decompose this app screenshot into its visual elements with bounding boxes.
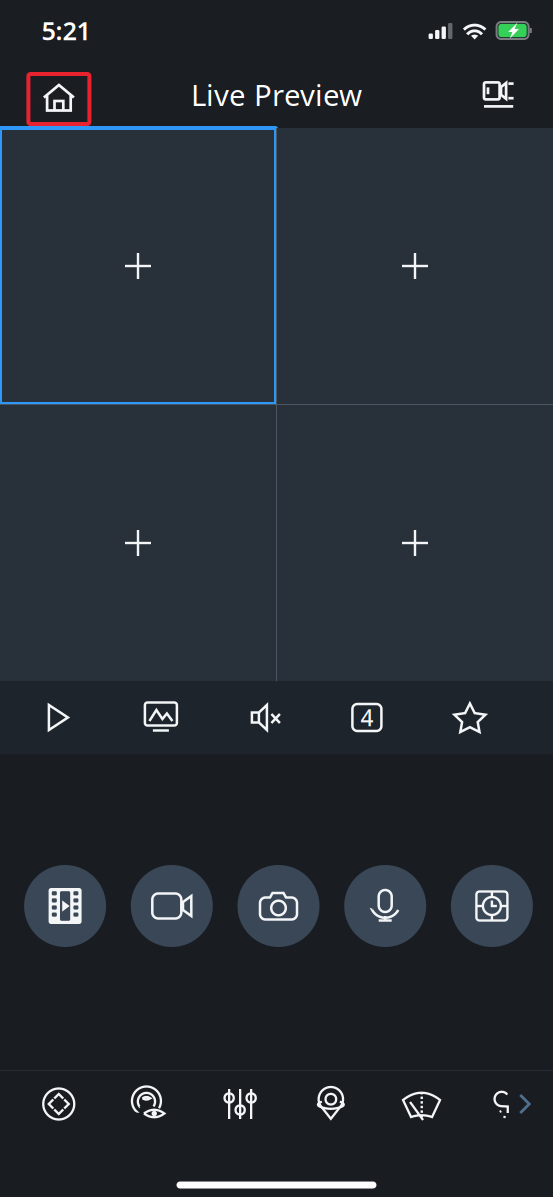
staticText: 5:21 [41, 14, 90, 47]
button[interactable]: Image adjustments [195, 1071, 285, 1137]
button[interactable]: Take photo [237, 865, 319, 947]
button[interactable]: Privacy mask [104, 1071, 195, 1137]
button[interactable]: Record video [131, 865, 213, 947]
button[interactable]: Recording settings [468, 70, 530, 119]
button[interactable]: Play [6, 681, 109, 754]
button[interactable]: Microphone [344, 865, 426, 947]
button[interactable]: Snapshot [109, 681, 212, 754]
button[interactable]: Add camera [0, 128, 276, 404]
button[interactable]: Clips [24, 865, 106, 947]
staticText: 4 [360, 702, 373, 732]
button[interactable]: Pan and tilt [13, 1071, 104, 1137]
button[interactable]: Wiper [376, 1071, 467, 1137]
button[interactable]: Add camera [277, 128, 553, 404]
button[interactable]: Home [28, 65, 89, 124]
staticText: Live Preview [191, 75, 362, 114]
button[interactable]: Presets [285, 1071, 376, 1137]
button[interactable]: More [467, 1071, 553, 1137]
button[interactable]: Mute [212, 681, 315, 754]
button[interactable]: Layout 4 [315, 681, 418, 754]
button[interactable]: Add camera [0, 405, 276, 681]
button[interactable]: Timer [451, 865, 533, 947]
button[interactable]: Add camera [277, 405, 553, 681]
button[interactable]: Favorite [418, 681, 521, 754]
